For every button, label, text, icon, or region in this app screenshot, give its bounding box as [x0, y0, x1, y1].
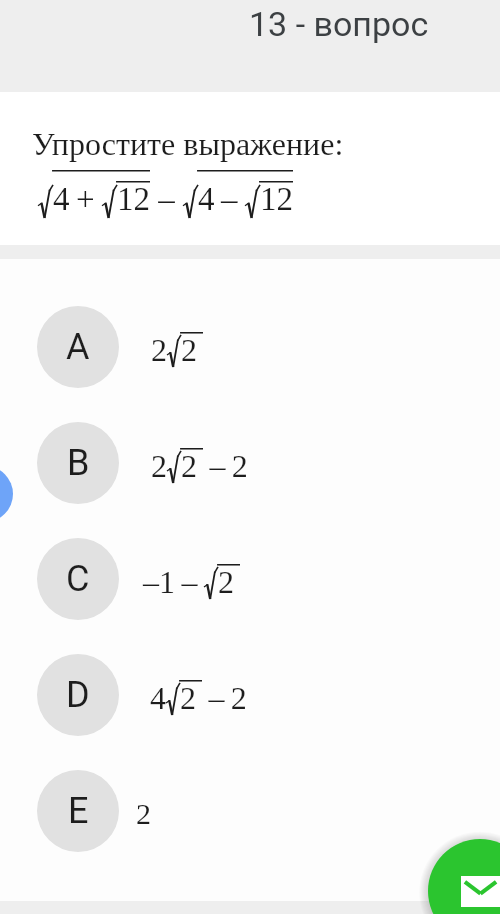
- staticText: 2: [180, 680, 196, 715]
- staticText: – 2: [202, 680, 247, 715]
- staticText: 2: [181, 332, 197, 367]
- button[interactable]: A: [0, 289, 500, 405]
- staticText: 12: [117, 181, 150, 218]
- staticText: 2: [181, 448, 197, 483]
- staticText: D: [66, 674, 90, 716]
- button[interactable]: B: [0, 405, 500, 521]
- staticText: A: [66, 326, 90, 368]
- button[interactable]: E: [0, 753, 500, 869]
- staticText: B: [67, 442, 90, 484]
- staticText: –1 –: [143, 564, 204, 599]
- button[interactable]: Send message: [428, 839, 500, 914]
- staticText: Упростите выражение:: [32, 126, 344, 161]
- staticText: 2: [218, 564, 234, 599]
- staticText: 4 +: [53, 181, 102, 218]
- staticText: 2: [151, 332, 167, 367]
- staticText: 4: [150, 680, 166, 715]
- staticText: 12: [260, 181, 293, 218]
- staticText: –: [150, 181, 183, 218]
- button[interactable]: Previous question: [0, 466, 13, 522]
- staticText: 13 - вопрос: [249, 4, 429, 44]
- staticText: E: [68, 790, 89, 832]
- staticText: 2: [136, 797, 151, 830]
- button[interactable]: C: [0, 521, 500, 637]
- staticText: 4 –: [198, 181, 245, 218]
- staticText: C: [66, 558, 90, 600]
- button[interactable]: D: [0, 637, 500, 753]
- staticText: 2: [151, 448, 167, 483]
- staticText: – 2: [203, 448, 248, 483]
